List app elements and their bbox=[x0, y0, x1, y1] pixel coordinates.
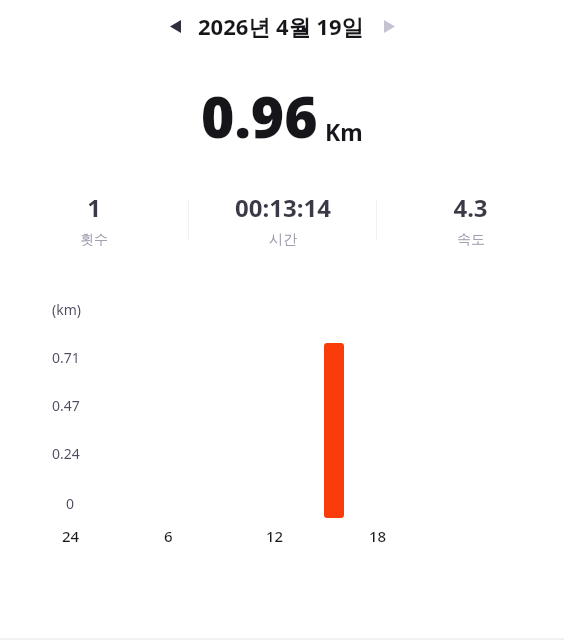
staticText: 0.24 bbox=[52, 444, 80, 463]
staticText: 00:13:14 bbox=[235, 191, 331, 224]
staticText: 12 bbox=[266, 526, 284, 546]
button[interactable]: 00:13:14 bbox=[189, 188, 376, 252]
staticText: 0 bbox=[66, 494, 75, 513]
staticText: 0.47 bbox=[52, 396, 80, 415]
staticText: 18 bbox=[369, 526, 387, 546]
staticText: 4.3 bbox=[453, 191, 488, 224]
button[interactable]: Next day bbox=[374, 11, 404, 41]
button[interactable]: 4.3 bbox=[377, 188, 564, 252]
staticText: Km bbox=[325, 116, 363, 147]
staticText: 속도 bbox=[457, 231, 485, 249]
button[interactable]: Previous day bbox=[160, 11, 190, 41]
staticText: 횟수 bbox=[80, 231, 108, 249]
staticText: 1 bbox=[87, 191, 101, 224]
staticText: 6 bbox=[164, 526, 173, 546]
staticText: (km) bbox=[52, 300, 81, 319]
staticText: 0.71 bbox=[52, 348, 80, 367]
staticText: 0.96 bbox=[201, 77, 318, 155]
staticText: 24 bbox=[62, 526, 80, 546]
staticText: 시간 bbox=[269, 231, 297, 249]
button[interactable]: 1 bbox=[0, 188, 188, 252]
staticText: 2026년 4월 19일 bbox=[198, 11, 364, 41]
